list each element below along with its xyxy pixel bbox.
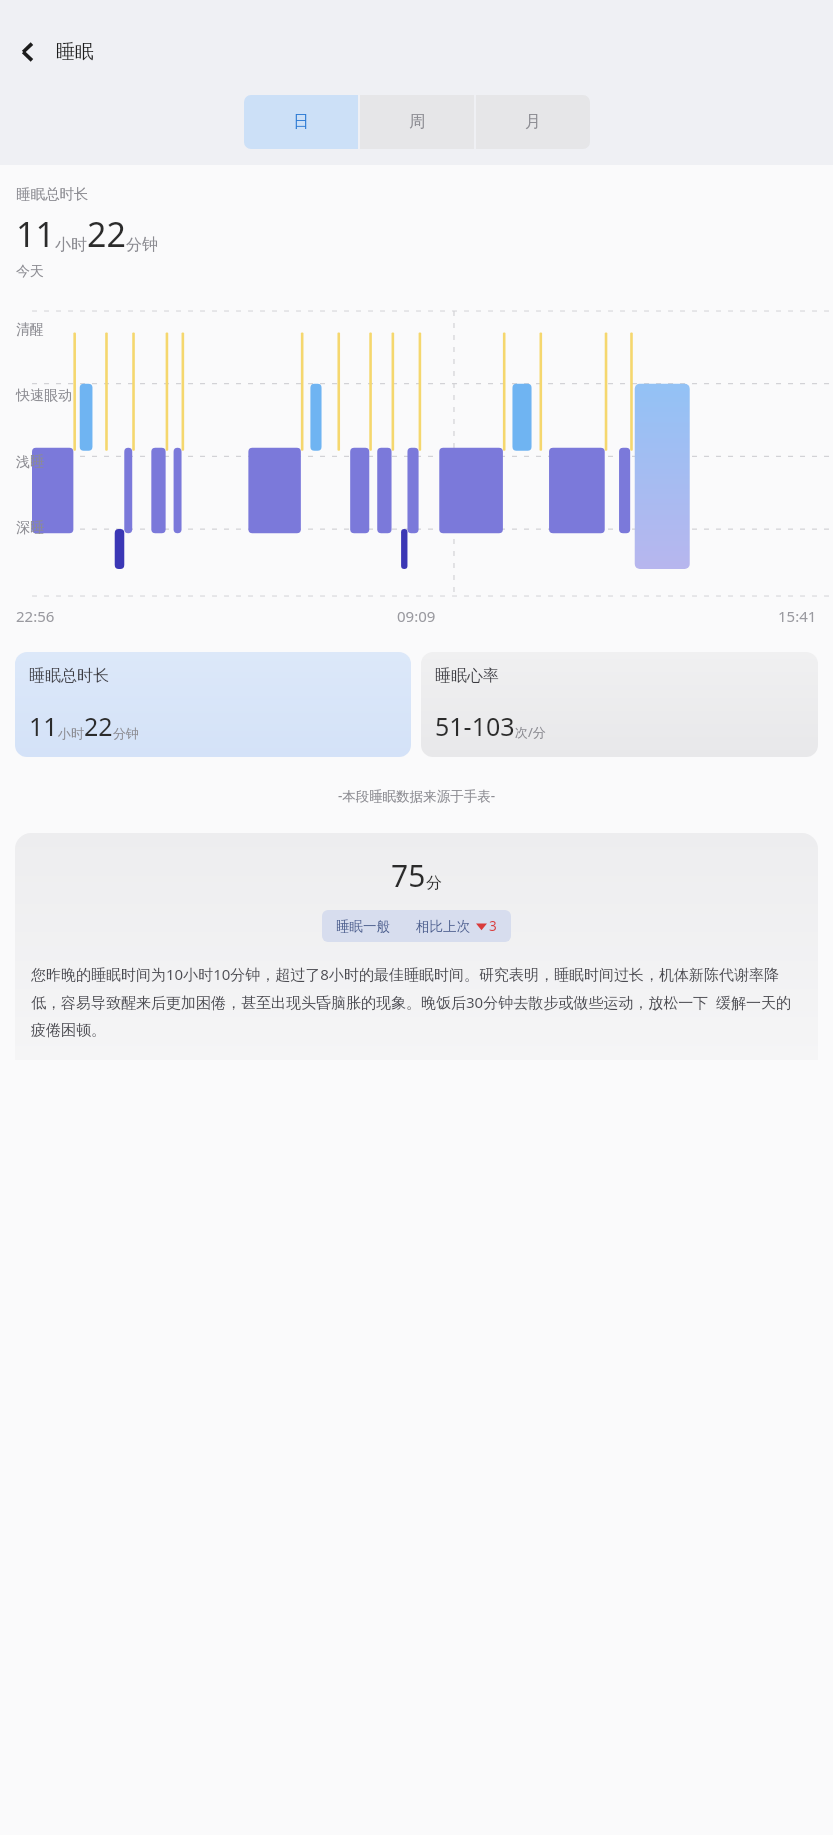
staticText: 分钟 (113, 725, 139, 741)
staticText: 15:41 (778, 606, 817, 626)
staticText: 75 (391, 855, 426, 896)
staticText: 11 (16, 211, 55, 257)
staticText: 深睡 (16, 519, 44, 537)
staticText: 11 (29, 709, 58, 743)
staticText: 相比上次 (416, 918, 470, 935)
staticText: 22 (84, 709, 113, 743)
staticText: 分 (426, 873, 442, 893)
button[interactable]: 75 (15, 833, 818, 1060)
staticText: 09:09 (397, 606, 436, 626)
staticText: 周 (409, 112, 425, 132)
button[interactable]: Back (0, 24, 56, 80)
staticText: 小时 (55, 235, 87, 255)
staticText: 清醒 (16, 321, 44, 339)
button[interactable]: 月 (476, 95, 590, 149)
staticText: 22:56 (16, 606, 55, 626)
staticText: -本段睡眠数据来源于手表- (0, 787, 833, 805)
staticText: 快速眼动 (16, 387, 72, 405)
staticText: 51-103 (435, 709, 515, 743)
staticText: 今天 (16, 263, 44, 281)
staticText: 睡眠心率 (435, 666, 499, 686)
staticText: 次/分 (515, 723, 546, 741)
staticText: 睡眠总时长 (16, 185, 89, 203)
button[interactable]: 睡眠总时长 (15, 652, 411, 757)
staticText: 睡眠 (56, 40, 94, 64)
staticText: 3 (489, 917, 497, 935)
staticText: 分钟 (126, 235, 158, 255)
staticText: 小时 (58, 725, 84, 741)
button[interactable]: 睡眠心率 (421, 652, 818, 757)
staticText: 浅睡 (16, 453, 44, 471)
staticText: 睡眠一般 (336, 918, 390, 935)
button[interactable]: 周 (360, 95, 474, 149)
staticText: 日 (293, 112, 309, 132)
staticText: 月 (525, 112, 541, 132)
staticText: 睡眠总时长 (29, 666, 109, 686)
staticText: 22 (87, 211, 126, 257)
button[interactable]: 日 (244, 95, 358, 149)
staticText: 您昨晚的睡眠时间为10小时10分钟，超过了8小时的最佳睡眠时间。研究表明，睡眠时… (31, 964, 802, 1040)
